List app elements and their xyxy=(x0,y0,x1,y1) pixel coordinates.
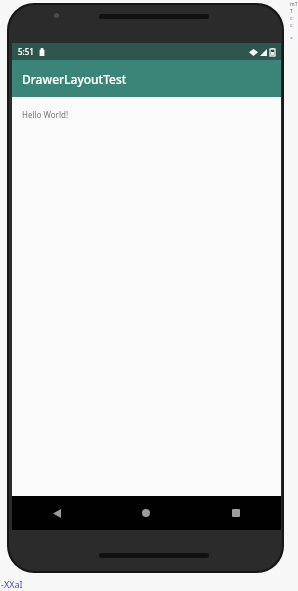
button[interactable]: Home xyxy=(101,496,191,530)
button[interactable]: Back xyxy=(12,496,101,530)
button[interactable]: Recents xyxy=(191,496,281,530)
staticText: c xyxy=(290,22,293,29)
staticText: Hello World! xyxy=(22,109,69,120)
staticText: -XXaI xyxy=(1,578,23,590)
staticText: T xyxy=(290,8,293,15)
staticText: = xyxy=(290,35,293,42)
staticText: mT xyxy=(290,1,298,8)
staticText: DrawerLayoutTest xyxy=(22,71,127,87)
staticText: 5:51 xyxy=(18,46,34,57)
staticText: c xyxy=(290,15,293,22)
button[interactable]: DrawerLayoutTest xyxy=(12,60,281,97)
